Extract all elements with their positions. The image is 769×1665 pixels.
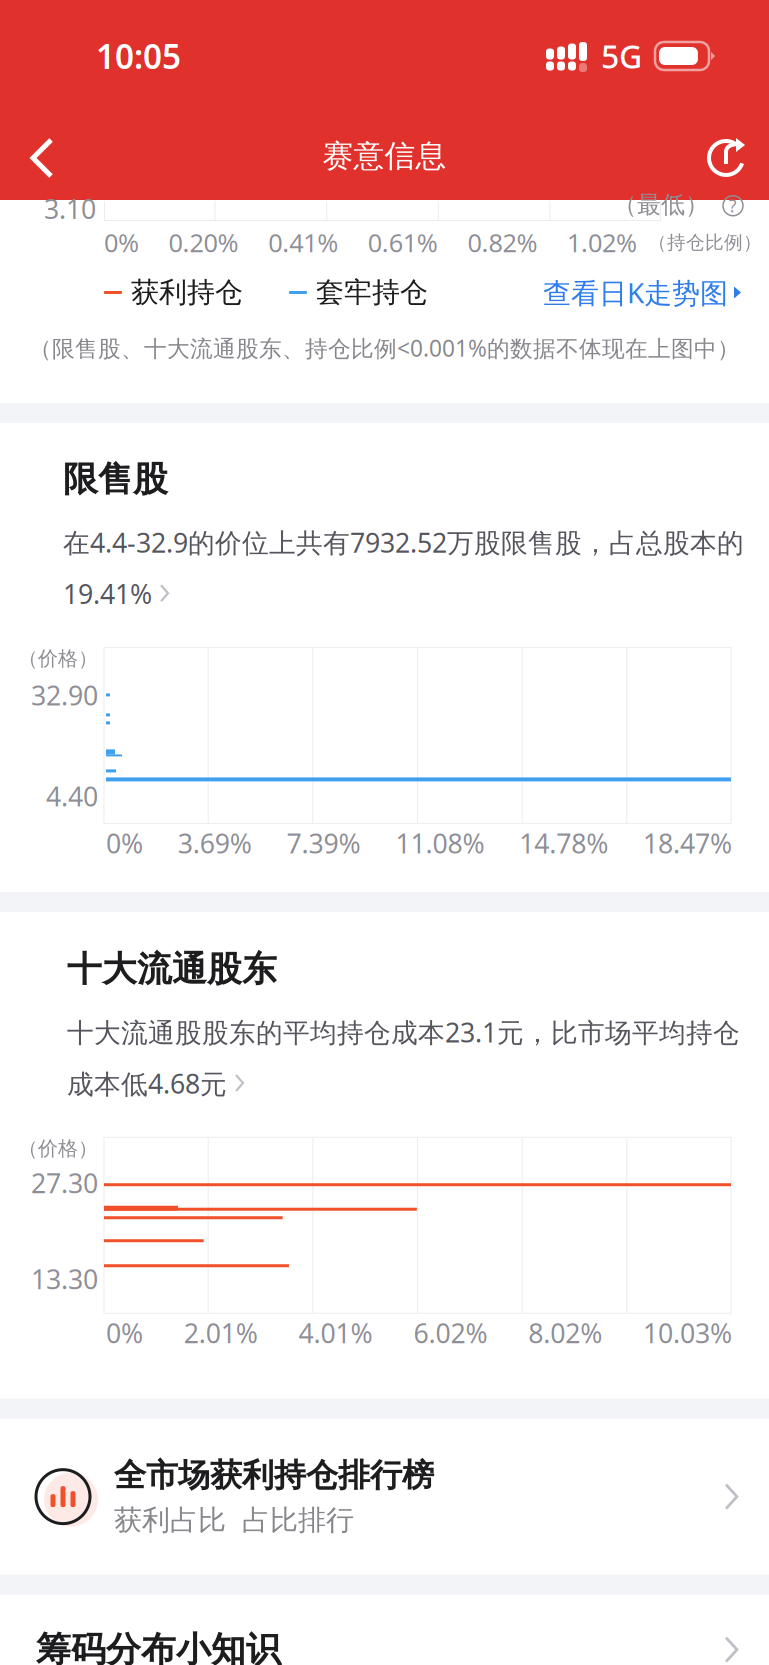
staticText: 19.41% xyxy=(63,576,152,611)
staticText: 在4.4-32.9的价位上共有7932.52万股限售股，占总股本的 xyxy=(63,525,744,560)
staticText: 全市场获利持仓排行榜 xyxy=(114,1456,434,1495)
staticText: 套牢持仓 xyxy=(316,275,428,310)
staticText: 6.02% xyxy=(413,1315,487,1351)
staticText: 3.10 xyxy=(44,191,96,226)
staticText: 0.41% xyxy=(268,226,338,259)
staticText: （限售股、十大流通股东、持仓比例<0.001%的数据不体现在上图中） xyxy=(29,333,740,363)
staticText: 0% xyxy=(104,226,139,259)
staticText: ? xyxy=(729,194,737,217)
button[interactable]: 刷新 xyxy=(684,112,769,200)
button[interactable]: 成本低4.68元 xyxy=(67,1066,245,1101)
button[interactable]: 查看日K走势图 xyxy=(543,274,769,311)
staticText: 查看日K走势图 xyxy=(543,274,728,311)
staticText: 4.40 xyxy=(46,778,98,814)
button[interactable]: 19.41% xyxy=(63,576,170,611)
staticText: 4.01% xyxy=(299,1315,373,1351)
staticText: 获利持仓 xyxy=(131,275,243,310)
staticText: 0.61% xyxy=(368,226,438,259)
staticText: 27.30 xyxy=(31,1165,98,1201)
staticText: 十大流通股东 xyxy=(67,948,277,990)
staticText: 筹码分布小知识 xyxy=(36,1628,281,1665)
staticText: 18.47% xyxy=(643,825,732,861)
button[interactable]: 返回 xyxy=(0,112,77,200)
staticText: 成本低4.68元 xyxy=(67,1066,227,1101)
staticText: 限售股 xyxy=(63,458,168,501)
staticText: 1.02% xyxy=(567,226,637,259)
staticText: 32.90 xyxy=(31,677,98,713)
staticText: 0.20% xyxy=(169,226,239,259)
staticText: 10:05 xyxy=(96,34,181,78)
staticText: 7.39% xyxy=(287,825,361,861)
staticText: 0.82% xyxy=(467,226,537,259)
staticText: 0% xyxy=(106,1315,143,1351)
staticText: 10.03% xyxy=(643,1315,732,1351)
staticText: 十大流通股股东的平均持仓成本23.1元，比市场平均持仓 xyxy=(67,1014,740,1050)
button[interactable]: 全市场获利持仓排行榜 xyxy=(0,1419,769,1575)
staticText: 5G xyxy=(601,35,642,77)
staticText: （价格） xyxy=(18,1136,98,1161)
staticText: 8.02% xyxy=(528,1315,602,1351)
staticText: 2.01% xyxy=(184,1315,258,1351)
staticText: 3.69% xyxy=(178,825,252,861)
staticText: （最低） xyxy=(613,190,709,219)
staticText: 13.30 xyxy=(31,1261,98,1297)
staticText: 赛意信息 xyxy=(322,137,446,175)
staticText: 0% xyxy=(106,825,143,861)
staticText: （价格） xyxy=(18,646,98,671)
button[interactable]: 筹码分布小知识 xyxy=(0,1595,769,1665)
staticText: 11.08% xyxy=(395,825,484,861)
staticText: （持仓比例） xyxy=(648,231,762,254)
staticText: 14.78% xyxy=(519,825,608,861)
staticText: 获利占比 占比排行 xyxy=(114,1503,354,1537)
